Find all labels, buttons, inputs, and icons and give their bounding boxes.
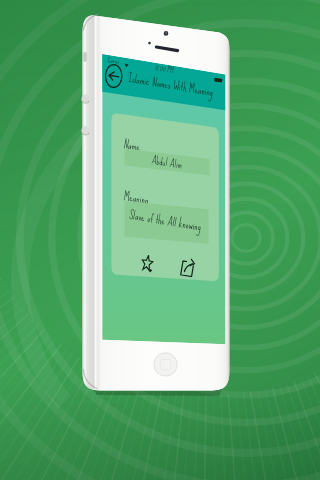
button[interactable]: Islamic Names With Meaning [0,0,320,480]
